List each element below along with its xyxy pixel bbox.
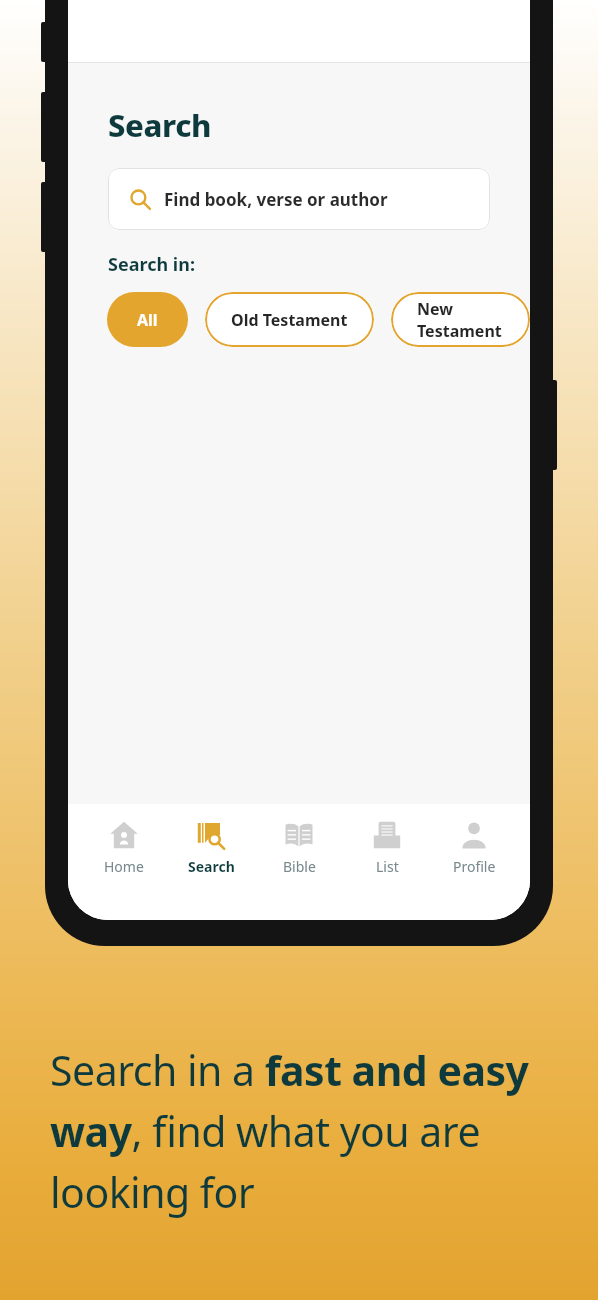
staticText: Profile (453, 857, 496, 876)
staticText: Bible (283, 857, 316, 876)
button[interactable]: All (107, 292, 188, 347)
button[interactable]: Old Testament (205, 292, 374, 347)
staticText: New Testament (417, 298, 504, 342)
staticText: Search (108, 104, 212, 146)
button[interactable]: Home (82, 818, 166, 878)
button[interactable]: List (345, 818, 429, 878)
staticText: Search in a fast and easy way, find what… (50, 1042, 550, 1220)
button[interactable]: New Testament (391, 292, 530, 347)
button[interactable]: Profile (432, 818, 516, 878)
staticText: List (376, 857, 399, 876)
button[interactable]: Search (169, 818, 253, 878)
button[interactable]: Bible (257, 818, 341, 878)
button[interactable]: Find book, verse or author (108, 168, 490, 230)
staticText: Search (188, 857, 235, 876)
staticText: Old Testament (231, 309, 348, 331)
staticText: All (137, 309, 158, 331)
staticText: Home (104, 857, 144, 876)
staticText: Search in: (108, 252, 195, 277)
staticText: Find book, verse or author (164, 188, 388, 211)
